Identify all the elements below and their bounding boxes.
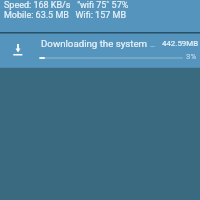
other: Download — [13, 43, 23, 57]
staticText: Speed: 168 KB/s "wifi 75˚ 57% — [4, 0, 129, 11]
staticText: 3% — [186, 52, 197, 61]
staticText: Mobile: 63.5 MB Wifi: 157 MB — [4, 10, 126, 21]
staticText: 442.59MB — [162, 39, 199, 48]
staticText: … — [150, 40, 156, 49]
button[interactable]: Download — [0, 33, 200, 68]
staticText: Downloading the system — [41, 38, 150, 49]
